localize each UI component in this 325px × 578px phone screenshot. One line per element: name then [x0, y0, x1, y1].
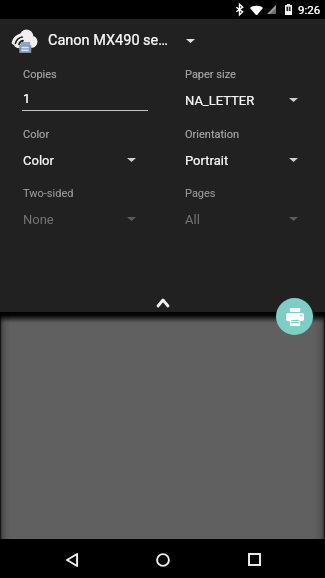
staticText: Orientation — [185, 128, 240, 141]
staticText: Copies — [23, 68, 57, 81]
button[interactable]: Color — [18, 151, 135, 177]
staticText: Portrait — [185, 153, 229, 168]
button[interactable]: None — [18, 210, 135, 236]
staticText: 1 — [23, 91, 31, 106]
staticText: Canon MX490 se… — [48, 32, 168, 49]
button[interactable]: Portrait — [180, 151, 297, 177]
button[interactable]: 1 — [18, 89, 154, 115]
staticText: Color — [23, 153, 54, 168]
staticText: None — [23, 212, 54, 227]
button[interactable]: Print — [276, 298, 313, 335]
button[interactable]: All — [180, 210, 297, 236]
button[interactable]: Canon MX490 se… — [0, 19, 325, 61]
button[interactable]: Home — [143, 540, 182, 578]
button[interactable]: Back — [52, 540, 91, 578]
button[interactable]: Collapse print options — [143, 283, 183, 323]
staticText: NA_LETTER — [185, 93, 255, 108]
staticText: Pages — [185, 187, 216, 200]
staticText: All — [185, 212, 200, 227]
staticText: 9:26 — [298, 3, 321, 16]
staticText: Two-sided — [23, 187, 74, 200]
button[interactable]: Recent apps — [235, 540, 274, 578]
staticText: Paper size — [185, 68, 236, 81]
button[interactable]: NA_LETTER — [180, 91, 297, 117]
staticText: Color — [23, 128, 50, 141]
